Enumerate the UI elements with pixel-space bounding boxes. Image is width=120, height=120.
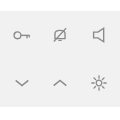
button[interactable]: Scroll down bbox=[5, 66, 39, 100]
button[interactable]: Brightness bbox=[82, 66, 116, 100]
button[interactable]: Unlock bbox=[5, 18, 39, 52]
button[interactable]: Volume bbox=[82, 18, 116, 52]
button[interactable]: Scroll up bbox=[43, 66, 77, 100]
button[interactable]: Mute notifications bbox=[43, 18, 77, 52]
